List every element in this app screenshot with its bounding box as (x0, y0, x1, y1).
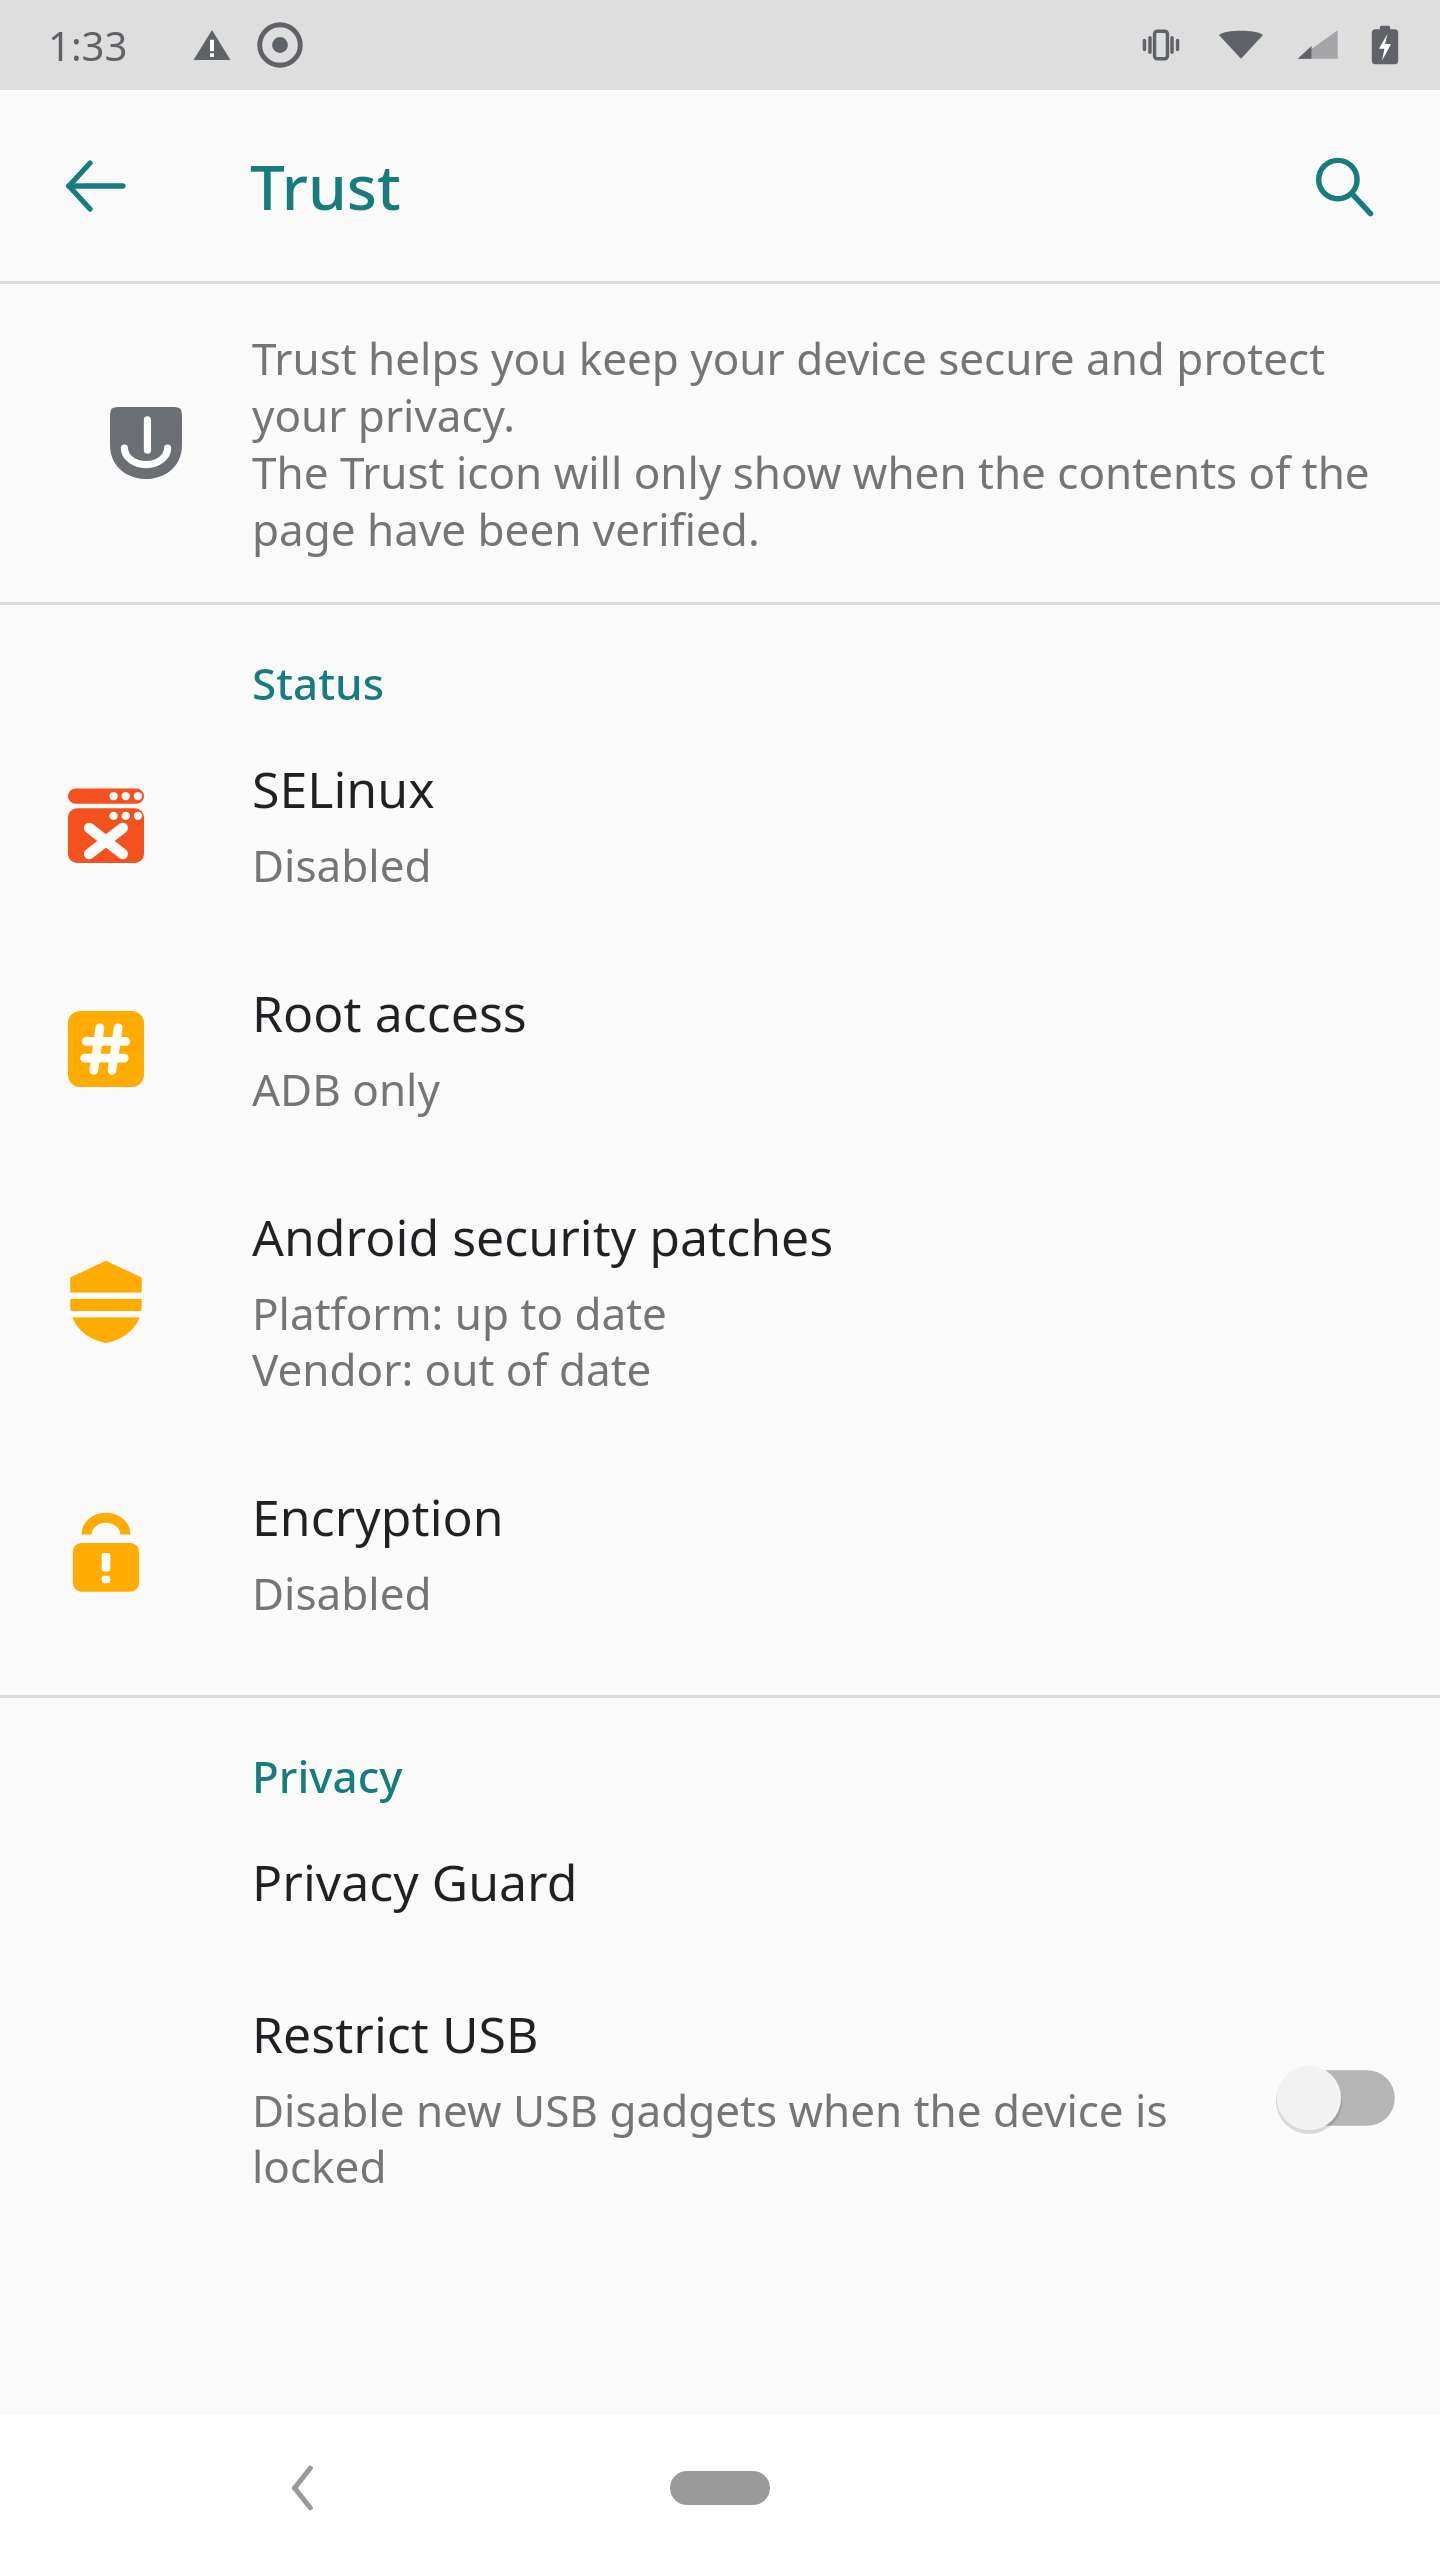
button[interactable]: Restrict USB toggle (1270, 2050, 1400, 2146)
button[interactable]: Back (250, 2433, 360, 2543)
button[interactable]: SELinux (0, 713, 1440, 937)
staticText: 1:33 (48, 18, 128, 72)
button[interactable]: Search (1288, 131, 1398, 241)
button[interactable]: Privacy Guard (0, 1806, 1440, 1958)
button[interactable]: Android security patches (0, 1161, 1440, 1441)
staticText: Privacy Guard (252, 1848, 578, 1916)
staticText: Status (252, 653, 385, 713)
staticText: ADB only (252, 1059, 440, 1119)
staticText: Disable new USB gadgets when the device … (252, 2080, 1246, 2196)
staticText: Trust helps you keep your device secure … (252, 328, 1392, 559)
staticText: Disabled (252, 835, 432, 895)
staticText: Encryption (252, 1483, 504, 1551)
button[interactable]: Root access (0, 937, 1440, 1161)
staticText: Privacy (252, 1746, 403, 1806)
staticText: Disabled (252, 1563, 432, 1623)
staticText: Trust (250, 144, 401, 228)
button[interactable]: Home (655, 2448, 785, 2528)
staticText: Restrict USB (252, 2000, 539, 2068)
button[interactable]: Back (40, 131, 150, 241)
staticText: SELinux (252, 755, 435, 823)
button[interactable]: Encryption (0, 1441, 1440, 1665)
button[interactable]: Restrict USB (0, 1958, 1440, 2238)
staticText: Platform: up to date Vendor: out of date (252, 1283, 667, 1399)
staticText: Root access (252, 979, 527, 1047)
staticText: Android security patches (252, 1203, 834, 1271)
